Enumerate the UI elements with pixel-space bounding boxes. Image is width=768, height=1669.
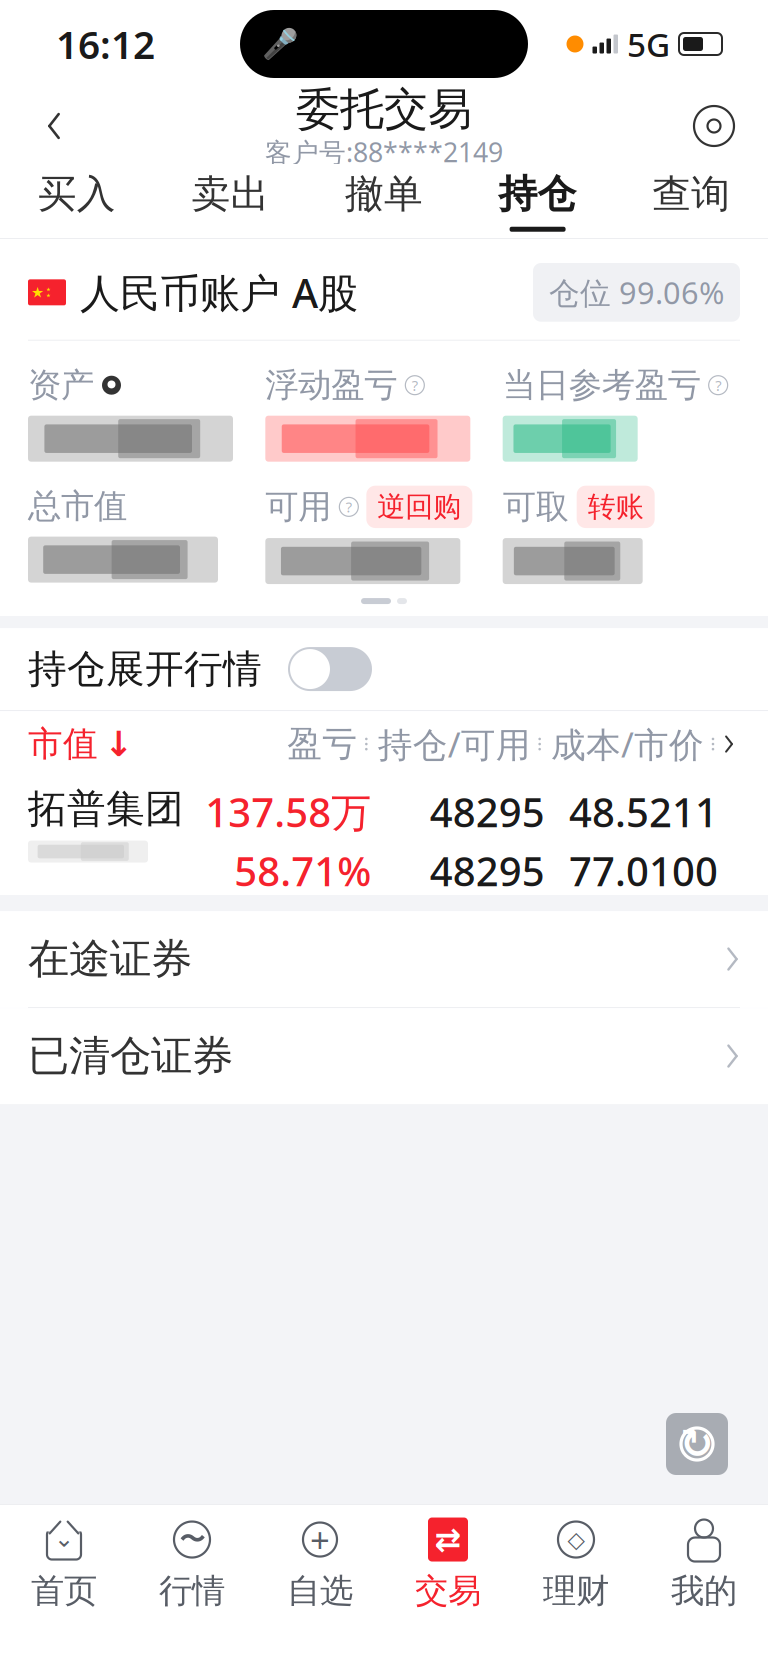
staticText: 拓普集团 [28,785,184,833]
staticText: 可用 [265,486,331,527]
button[interactable]: 拓普集团 [0,777,768,895]
staticText: 持仓展开行情 [28,645,262,693]
staticText: 成本/市价 [551,721,704,767]
staticText: 48295 [430,844,545,897]
staticText: + [310,1516,330,1562]
staticText: 撤单 [345,170,423,218]
staticText: 🎤 [262,27,299,61]
staticText: 77.0100 [569,844,718,897]
staticText: ? [346,497,352,517]
staticText: 客户号:88****2149 [265,134,503,170]
staticText: 行情 [159,1570,225,1611]
staticText: ⌄ [54,1525,74,1552]
staticText: 资产 [28,365,94,406]
button[interactable]: ⌂ [0,1505,128,1623]
button[interactable]: 在途证券 [0,911,768,1007]
staticText: 盈亏 [287,723,357,765]
staticText: 浮动盈亏 [265,365,397,406]
staticText: 理财 [543,1570,609,1611]
button[interactable]: 持仓 [461,164,614,238]
staticText: 买入 [38,170,116,218]
staticText: ◇ [567,1527,584,1552]
button[interactable]: 刷新 [666,1413,728,1475]
staticText: 人民币账户 A股 [80,266,358,319]
staticText: 仓位 99.06% [549,272,724,313]
staticText: 16:12 [56,18,155,70]
staticText: 持仓/可用 [378,721,531,767]
staticText: 58.71% [234,844,371,897]
button[interactable]: 卖出 [154,164,307,238]
staticText: 48295 [430,785,545,838]
button[interactable]: 持仓展开行情开关 [288,647,372,691]
button[interactable]: 设置 [678,90,750,162]
button[interactable]: 〜 [128,1505,256,1623]
staticText: 可取 [503,486,569,527]
staticText: 转账 [588,490,644,524]
staticText: 137.58万 [205,785,371,838]
button[interactable]: 已清仓证券 [0,1008,768,1104]
staticText: 市值 [28,723,98,765]
staticText: ? [412,375,418,395]
staticText: 已清仓证券 [28,1031,233,1081]
button[interactable]: 撤单 [307,164,461,238]
staticText: 48.5211 [569,785,718,838]
staticText: 自选 [287,1570,353,1611]
button[interactable]: 返回 [18,90,90,162]
staticText: ⇄ [434,1521,461,1558]
staticText: 总市值 [28,486,127,527]
staticText: 逆回购 [377,490,461,524]
staticText: 委托交易 [296,82,472,136]
staticText: 在途证券 [28,934,192,984]
staticText: 〜 [179,1524,204,1555]
button[interactable]: 买入 [0,164,154,238]
staticText: ★ [46,292,51,298]
staticText: 交易 [415,1570,481,1611]
staticText: 5G [627,22,670,66]
staticText: ? [715,375,721,395]
staticText: ↻ [680,1421,714,1467]
button[interactable]: 我的 [640,1505,768,1623]
staticText: 持仓 [499,170,577,218]
staticText: 卖出 [191,170,269,218]
staticText: 查询 [652,170,730,218]
button[interactable]: ◇ [512,1505,640,1623]
staticText: 我的 [671,1570,737,1611]
button[interactable]: 查询 [614,164,768,238]
button[interactable]: + [256,1505,384,1623]
staticText: 首页 [31,1570,97,1611]
button[interactable]: ⇄ [384,1505,512,1623]
staticText: 当日参考盈亏 [503,365,701,406]
staticText: ↓ [104,724,133,764]
staticText: ★ [46,286,51,292]
staticText: ★ [31,284,44,301]
